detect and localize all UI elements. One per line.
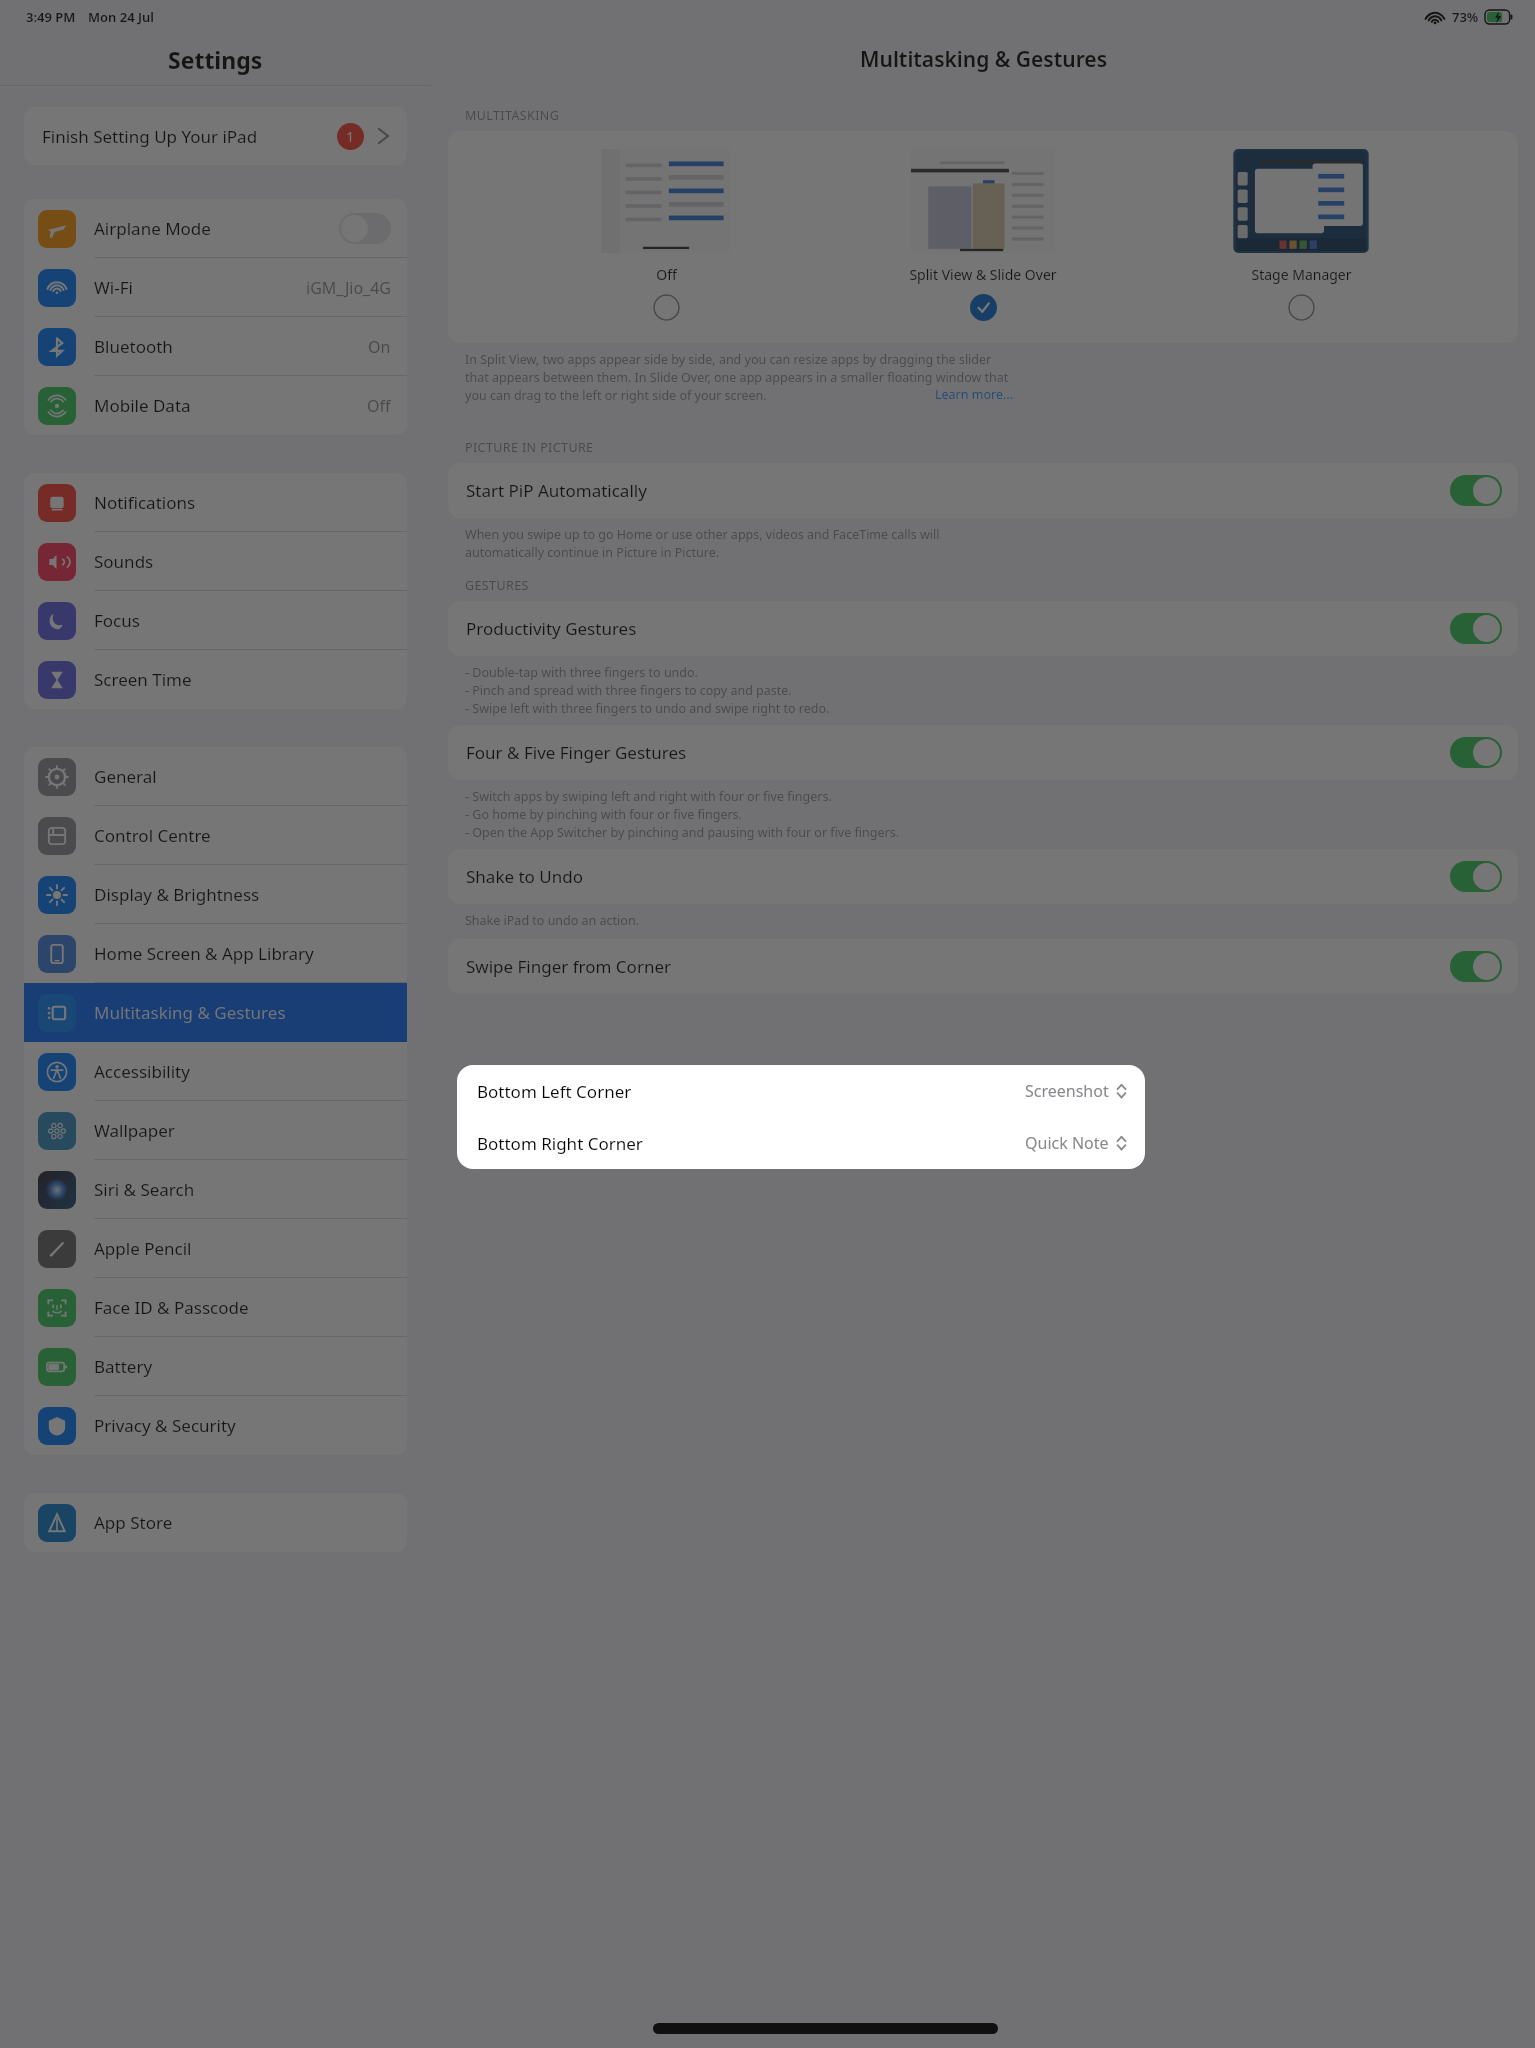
button[interactable]: Shake to Undo toggle: [1450, 861, 1502, 892]
button[interactable]: Multitasking & Gestures: [24, 983, 407, 1042]
button[interactable]: Bottom Left Corner: [477, 1065, 1127, 1117]
staticText: In Split View, two apps appear side by s…: [465, 351, 1009, 404]
button[interactable]: Four & Five Finger Gestures toggle: [1450, 737, 1502, 768]
staticText: - Double-tap with three fingers to undo.…: [465, 664, 830, 717]
button[interactable]: Bottom Right Corner: [477, 1117, 1127, 1169]
button[interactable]: Finish Setting Up Your iPad: [24, 107, 407, 165]
staticText: Swipe Finger from Corner: [466, 955, 672, 978]
button[interactable]: Wi-Fi: [24, 258, 407, 317]
staticText: Battery: [94, 1355, 153, 1378]
staticText: Quick Note: [1025, 1132, 1109, 1154]
staticText: iGM_Jio_4G: [306, 277, 391, 299]
staticText: MULTITASKING: [465, 107, 560, 124]
staticText: Start PiP Automatically: [466, 479, 647, 502]
staticText: Accessibility: [94, 1060, 190, 1083]
staticText: Four & Five Finger Gestures: [466, 741, 687, 764]
button[interactable]: Face ID & Passcode: [24, 1278, 407, 1337]
button[interactable]: Bluetooth: [24, 317, 407, 376]
button[interactable]: Swipe Finger from Corner toggle: [1450, 951, 1502, 982]
button[interactable]: Shake to Undo: [448, 849, 1518, 904]
staticText: Multitasking & Gestures: [94, 1001, 286, 1024]
button[interactable]: Split View & Slide Over: [883, 149, 1083, 321]
staticText: 1: [346, 127, 355, 146]
staticText: Settings: [168, 44, 263, 75]
staticText: On: [368, 336, 391, 358]
staticText: Privacy & Security: [94, 1414, 236, 1437]
button[interactable]: Apple Pencil: [24, 1219, 407, 1278]
staticText: Bottom Right Corner: [477, 1132, 643, 1155]
button[interactable]: Siri & Search: [24, 1160, 407, 1219]
staticText: App Store: [94, 1511, 173, 1534]
staticText: Stage Manager: [1251, 265, 1352, 284]
button[interactable]: Privacy & Security: [24, 1396, 407, 1455]
staticText: Productivity Gestures: [466, 617, 637, 640]
button[interactable]: Learn more...: [935, 386, 1014, 403]
staticText: Focus: [94, 609, 140, 632]
button[interactable]: Display & Brightness: [24, 865, 407, 924]
button[interactable]: Accessibility: [24, 1042, 407, 1101]
staticText: Multitasking & Gestures: [860, 45, 1107, 74]
button[interactable]: Focus: [24, 591, 407, 650]
staticText: Wi-Fi: [94, 276, 133, 299]
staticText: Mobile Data: [94, 394, 191, 417]
staticText: Siri & Search: [94, 1178, 195, 1201]
button[interactable]: Airplane Mode: [24, 199, 407, 258]
staticText: - Switch apps by swiping left and right …: [465, 788, 899, 841]
button[interactable]: Wallpaper: [24, 1101, 407, 1160]
staticText: Bottom Left Corner: [477, 1080, 632, 1103]
button[interactable]: Notifications: [24, 473, 407, 532]
staticText: Screen Time: [94, 668, 192, 691]
staticText: Off: [367, 395, 391, 417]
staticText: Shake to Undo: [466, 865, 583, 888]
staticText: Shake iPad to undo an action.: [465, 912, 639, 929]
button[interactable]: Toggle: [339, 213, 391, 244]
staticText: 73%: [1452, 8, 1479, 26]
button[interactable]: App Store: [24, 1493, 407, 1552]
staticText: Notifications: [94, 491, 196, 514]
staticText: Airplane Mode: [94, 217, 211, 240]
button[interactable]: Start PiP Automatically: [448, 463, 1518, 518]
button[interactable]: Off: [566, 149, 766, 321]
staticText: Control Centre: [94, 824, 211, 847]
staticText: Face ID & Passcode: [94, 1296, 249, 1319]
staticText: Finish Setting Up Your iPad: [42, 125, 258, 148]
staticText: Sounds: [94, 550, 154, 573]
staticText: When you swipe up to go Home or use othe…: [465, 526, 940, 561]
button[interactable]: Control Centre: [24, 806, 407, 865]
button[interactable]: General: [24, 747, 407, 806]
staticText: Off: [656, 265, 677, 284]
staticText: Bluetooth: [94, 335, 173, 358]
staticText: PICTURE IN PICTURE: [465, 439, 594, 456]
button[interactable]: Sounds: [24, 532, 407, 591]
staticText: Apple Pencil: [94, 1237, 192, 1260]
button[interactable]: Productivity Gestures toggle: [1450, 613, 1502, 644]
button[interactable]: Screen Time: [24, 650, 407, 709]
button[interactable]: Productivity Gestures: [448, 601, 1518, 656]
staticText: Screenshot: [1025, 1080, 1109, 1102]
staticText: Split View & Slide Over: [909, 265, 1057, 284]
button[interactable]: Battery: [24, 1337, 407, 1396]
staticText: Display & Brightness: [94, 883, 260, 906]
staticText: Home Screen & App Library: [94, 942, 314, 965]
button[interactable]: Mobile Data: [24, 376, 407, 435]
staticText: Mon 24 Jul: [88, 8, 155, 26]
button[interactable]: Swipe Finger from Corner: [448, 939, 1518, 994]
staticText: GESTURES: [465, 577, 529, 594]
button[interactable]: Four & Five Finger Gestures: [448, 725, 1518, 780]
button[interactable]: Stage Manager: [1201, 149, 1401, 321]
staticText: General: [94, 765, 157, 788]
button[interactable]: Home Screen & App Library: [24, 924, 407, 983]
staticText: Wallpaper: [94, 1119, 175, 1142]
staticText: 3:49 PM: [26, 8, 76, 26]
button[interactable]: Start PiP Automatically toggle: [1450, 475, 1502, 506]
